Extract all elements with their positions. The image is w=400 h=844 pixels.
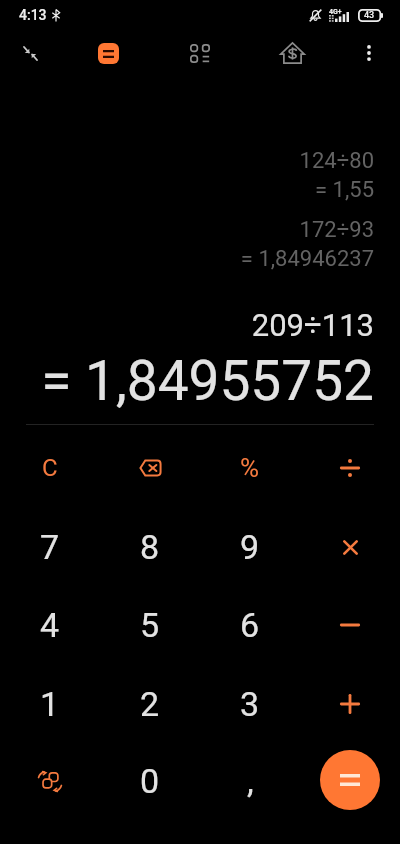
button[interactable]: Backspace [105,431,195,505]
button[interactable]: Multiply [305,510,395,584]
button[interactable]: Minus [305,588,395,662]
button[interactable]: 7 [5,510,95,584]
staticText: 43 [364,10,375,21]
staticText: , [247,761,254,801]
button[interactable]: 5 [105,588,195,662]
staticText: C [42,454,58,482]
staticText: 0 [140,761,160,801]
staticText: 4:13 [19,7,47,23]
button[interactable]: 0 [105,744,195,818]
staticText: 9 [240,527,260,567]
staticText: 209÷113 [251,307,374,343]
button[interactable]: 2 [105,667,195,741]
button[interactable]: Collapse [8,31,52,75]
staticText: 4G+ [329,8,342,16]
button[interactable]: 1 [5,667,95,741]
button[interactable]: , [205,744,295,818]
button[interactable]: % [205,431,295,505]
button[interactable]: 9 [205,510,295,584]
button[interactable]: Divide [305,431,395,505]
staticText: 7 [40,527,60,567]
staticText: 124÷80 [299,148,374,174]
button[interactable]: 3 [205,667,295,741]
staticText: 3 [240,684,260,724]
button[interactable]: Equals [320,750,380,810]
staticText: = 1,84955752 [41,349,374,413]
button[interactable]: 4 [5,588,95,662]
staticText: = 1,55 [315,177,374,203]
staticText: % [240,453,260,483]
staticText: 1 [40,684,60,724]
button[interactable]: Mortgage calculator [270,31,314,75]
staticText: 172÷93 [299,217,374,243]
staticText: 6 [240,605,260,645]
staticText: 2 [140,684,160,724]
staticText: 5 [140,605,160,645]
button[interactable]: More options [347,31,391,75]
button[interactable]: Plus [305,667,395,741]
staticText: = 1,84946237 [240,246,374,272]
button[interactable]: Convert units [5,744,95,818]
button[interactable]: 8 [105,510,195,584]
button[interactable]: Unit converter [178,31,222,75]
staticText: 8 [140,527,160,567]
button[interactable]: C [5,431,95,505]
staticText: 4 [40,605,60,645]
button[interactable]: Calculator [86,31,130,75]
button[interactable]: 6 [205,588,295,662]
